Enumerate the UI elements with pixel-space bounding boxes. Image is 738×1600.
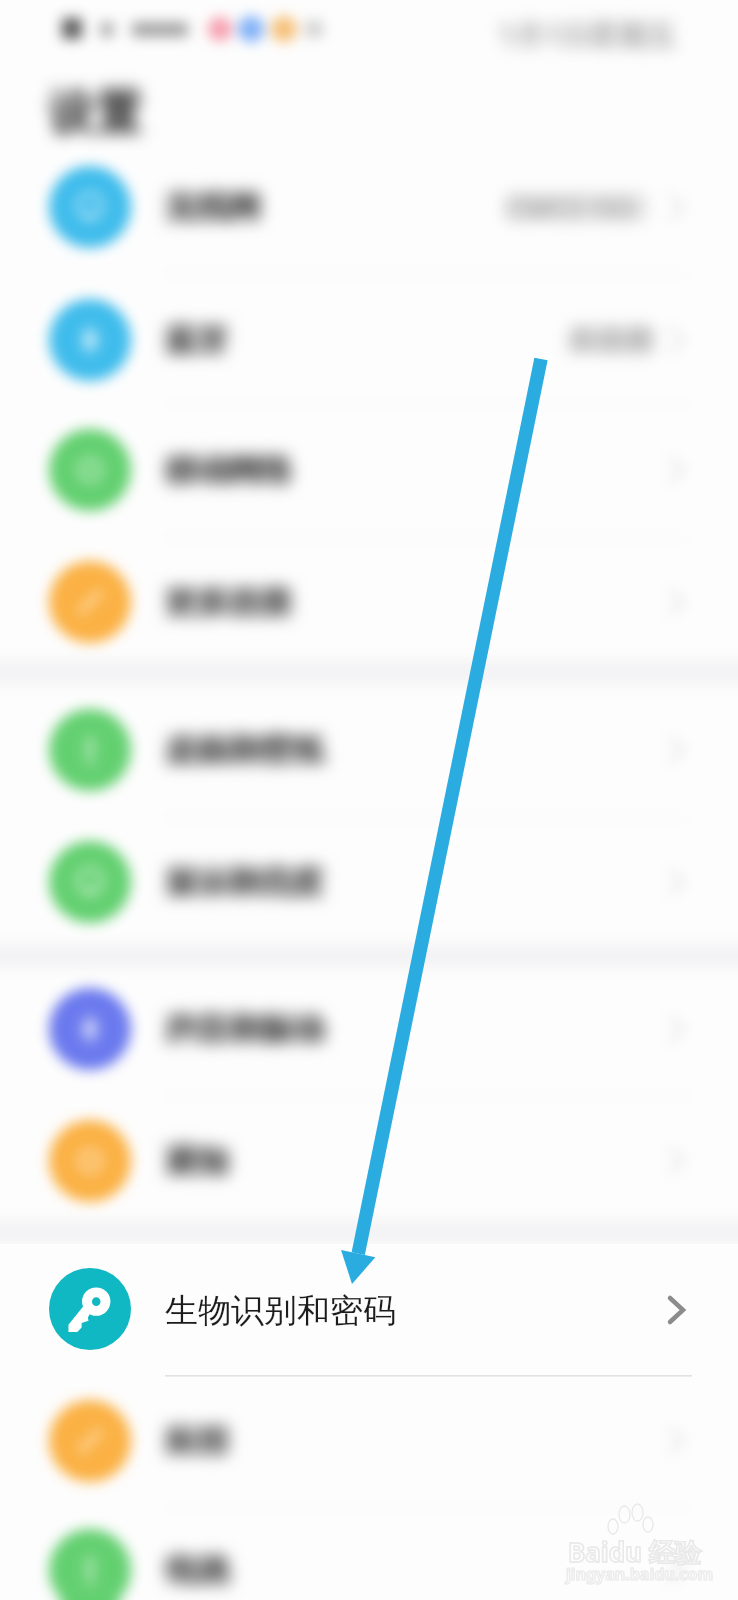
staticText: 显示和亮度 <box>166 861 326 901</box>
staticText: 未连接 <box>567 321 657 358</box>
staticText: jingyan.baidu.com <box>566 1563 714 1585</box>
staticText: CMCC-5G <box>505 188 650 227</box>
staticText: 1月1日星期五 <box>498 14 677 54</box>
staticText: 蓝牙 <box>166 319 230 359</box>
staticText: 更多连接 <box>164 581 292 621</box>
staticText: 通知 <box>164 1140 228 1180</box>
staticText: 生物识别和密码 <box>165 1290 396 1332</box>
staticText: CMCC-5G <box>506 188 651 227</box>
staticText: 桌面和壁纸 <box>166 729 326 769</box>
staticText: 更多连接 <box>167 581 295 621</box>
staticText: 通知 <box>167 1140 231 1180</box>
staticText: 桌面和壁纸 <box>165 729 325 769</box>
staticText: 声音和振动 <box>165 1008 325 1048</box>
staticText: 蓝牙 <box>165 319 229 359</box>
staticText: 未连接 <box>568 321 658 358</box>
staticText: 显示和亮度 <box>164 861 324 901</box>
staticText: 无线网 <box>164 186 260 226</box>
staticText: 设置 <box>48 84 142 143</box>
staticText: 声音和振动 <box>166 1008 326 1048</box>
staticText: 无线网 <box>167 186 263 226</box>
staticText: 电池 <box>165 1549 229 1589</box>
staticText: 移动网络 <box>165 449 293 489</box>
staticText: 应用 <box>165 1420 229 1460</box>
staticText: 显示和亮度 <box>167 861 327 901</box>
staticText: 通知 <box>166 1140 230 1180</box>
staticText: 通知 <box>165 1140 229 1180</box>
staticText: 电池 <box>164 1549 228 1589</box>
staticText: 移动网络 <box>164 449 292 489</box>
staticText: 桌面和壁纸 <box>164 729 324 769</box>
staticText: Baidu 经验 <box>568 1534 701 1570</box>
staticText: 应用 <box>167 1420 231 1460</box>
staticText: 电池 <box>167 1549 231 1589</box>
staticText: 蓝牙 <box>167 319 231 359</box>
button[interactable]: 生物识别和密码 <box>0 1244 738 1374</box>
staticText: 1月1日星期五 <box>499 14 678 54</box>
staticText: 显示和亮度 <box>165 861 325 901</box>
staticText: 应用 <box>166 1420 230 1460</box>
staticText: 更多连接 <box>166 581 294 621</box>
staticText: 声音和振动 <box>164 1008 324 1048</box>
staticText: 蓝牙 <box>164 319 228 359</box>
staticText: 无线网 <box>166 186 262 226</box>
staticText: 移动网络 <box>167 449 295 489</box>
staticText: 桌面和壁纸 <box>167 729 327 769</box>
staticText: 电池 <box>166 1549 230 1589</box>
staticText: 声音和振动 <box>167 1008 327 1048</box>
staticText: 无线网 <box>165 186 261 226</box>
staticText: 应用 <box>164 1420 228 1460</box>
staticText: 更多连接 <box>165 581 293 621</box>
staticText: 移动网络 <box>166 449 294 489</box>
